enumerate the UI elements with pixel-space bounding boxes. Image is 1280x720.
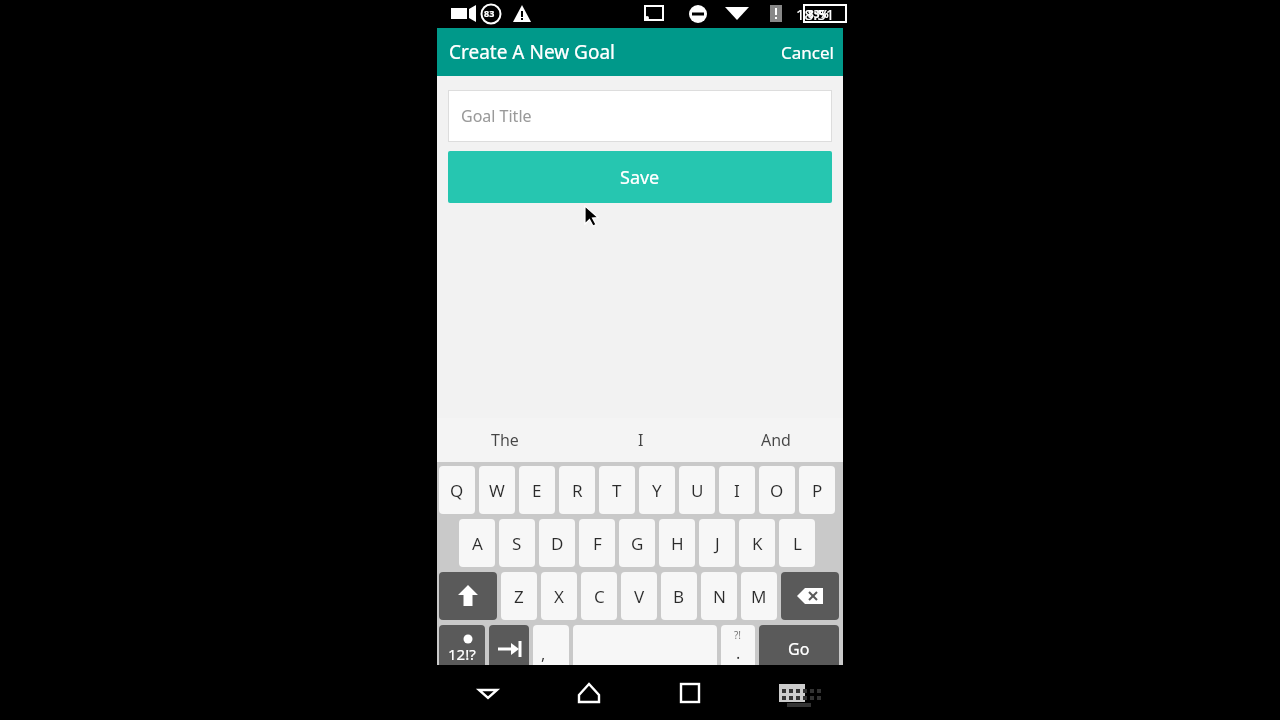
staticText: H	[671, 532, 684, 555]
staticText: A	[472, 532, 483, 555]
button[interactable]: L	[779, 519, 815, 567]
button[interactable]: Go	[759, 625, 839, 673]
button[interactable]: E	[519, 466, 555, 514]
staticText: S	[512, 532, 522, 555]
button[interactable]: B	[661, 572, 697, 620]
button[interactable]: I	[719, 466, 755, 514]
button[interactable]: O	[759, 466, 795, 514]
button[interactable]: R	[559, 466, 595, 514]
button[interactable]: W	[479, 466, 515, 514]
staticText: .	[736, 642, 741, 664]
button[interactable]: Back	[437, 665, 538, 720]
button[interactable]: I	[573, 418, 708, 462]
staticText: I	[734, 479, 740, 502]
staticText: P	[812, 479, 823, 502]
staticText: L	[793, 532, 802, 555]
staticText: M	[751, 585, 767, 608]
staticText: F	[593, 532, 602, 555]
staticText: Z	[514, 585, 524, 608]
button[interactable]: Hide keyboard	[741, 665, 843, 720]
staticText: Goal Title	[461, 105, 532, 127]
staticText: ,	[541, 643, 546, 665]
staticText: Q	[450, 479, 464, 502]
button[interactable]: P	[799, 466, 835, 514]
button[interactable]: Recents	[639, 665, 741, 720]
button[interactable]: Y	[639, 466, 675, 514]
staticText: C	[594, 585, 605, 608]
button[interactable]: Goal Title	[448, 90, 832, 142]
staticText: T	[612, 479, 622, 502]
button[interactable]: S	[499, 519, 535, 567]
staticText: U	[691, 479, 704, 502]
staticText: W	[489, 479, 505, 502]
button[interactable]: T	[599, 466, 635, 514]
button[interactable]: D	[539, 519, 575, 567]
button[interactable]: And	[708, 418, 843, 462]
staticText: K	[752, 532, 763, 555]
staticText: Save	[620, 165, 660, 190]
button[interactable]: Backspace	[781, 572, 839, 620]
button[interactable]: X	[541, 572, 577, 620]
staticText: ?!	[734, 628, 742, 642]
button[interactable]: Tab	[489, 625, 529, 673]
button[interactable]: Symbols	[439, 625, 485, 673]
staticText: D	[551, 532, 564, 555]
staticText: 83%	[808, 7, 829, 21]
staticText: O	[770, 479, 784, 502]
button[interactable]: The	[437, 418, 573, 462]
button[interactable]: Cancel	[772, 33, 843, 72]
button[interactable]: V	[621, 572, 657, 620]
button[interactable]: M	[741, 572, 777, 620]
button[interactable]: Home	[538, 665, 639, 720]
staticText: 12!?	[448, 644, 476, 664]
button[interactable]: Q	[439, 466, 475, 514]
staticText: R	[572, 479, 583, 502]
staticText: 18:51	[796, 4, 835, 24]
staticText: Go	[788, 638, 810, 660]
staticText: J	[715, 532, 720, 555]
button[interactable]: Shift	[439, 572, 497, 620]
button[interactable]: K	[739, 519, 775, 567]
staticText: N	[713, 585, 726, 608]
button[interactable]: N	[701, 572, 737, 620]
button[interactable]: G	[619, 519, 655, 567]
button[interactable]: F	[579, 519, 615, 567]
staticText: Create A New Goal	[449, 39, 615, 65]
button[interactable]: Save	[448, 151, 832, 203]
staticText: V	[634, 585, 645, 608]
button[interactable]: J	[699, 519, 735, 567]
button[interactable]: ?!	[721, 625, 755, 673]
staticText: G	[631, 532, 644, 555]
staticText: B	[673, 585, 685, 608]
staticText: The	[491, 429, 519, 451]
staticText: Cancel	[781, 41, 834, 64]
staticText: E	[532, 479, 542, 502]
button[interactable]: Z	[501, 572, 537, 620]
button[interactable]: H	[659, 519, 695, 567]
staticText: Y	[652, 479, 662, 502]
staticText: X	[554, 585, 564, 608]
staticText: And	[761, 429, 791, 451]
button[interactable]: C	[581, 572, 617, 620]
staticText: I	[638, 429, 644, 451]
staticText: 83	[484, 7, 495, 19]
button[interactable]: ,	[533, 625, 569, 673]
button[interactable]: Space	[573, 625, 717, 673]
button[interactable]: A	[459, 519, 495, 567]
button[interactable]: U	[679, 466, 715, 514]
